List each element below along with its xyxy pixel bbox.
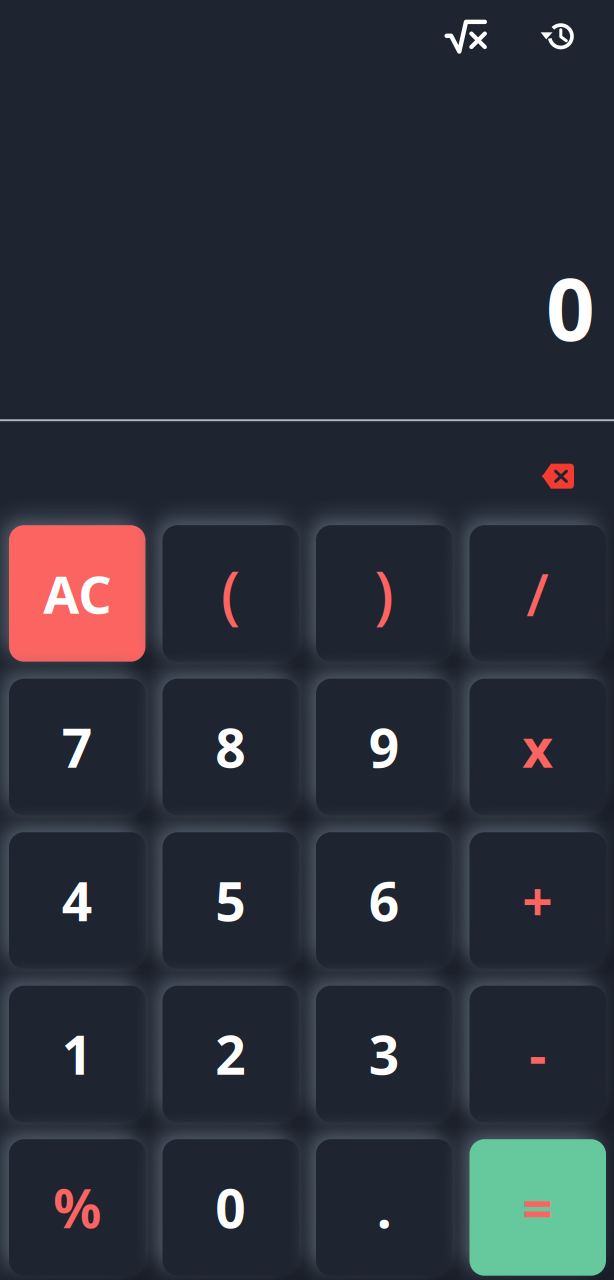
staticText: 0 [546,251,595,364]
button[interactable]: AC [9,525,145,662]
button[interactable]: 8 [162,679,299,815]
staticText: AC [43,559,111,628]
staticText: 9 [369,711,400,782]
button[interactable]: x [469,679,606,815]
staticText: 7 [62,711,93,782]
button[interactable]: ( [162,525,299,662]
staticText: x [522,711,553,782]
staticText: - [529,1018,546,1089]
button[interactable]: 3 [316,986,452,1122]
staticText: 4 [62,865,93,936]
button[interactable]: 0 [162,1139,299,1276]
staticText: % [53,1172,101,1243]
staticText: 5 [215,865,246,936]
staticText: ( [221,552,241,635]
button[interactable]: ) [316,525,452,662]
button[interactable]: 1 [9,986,145,1122]
staticText: 2 [215,1018,246,1089]
button[interactable]: Backspace [529,450,587,502]
staticText: = [522,1172,553,1243]
button[interactable]: = [469,1139,606,1276]
staticText: 3 [369,1018,400,1089]
staticText: 1 [62,1018,93,1089]
staticText: + [522,865,553,936]
staticText: 8 [215,711,246,782]
button[interactable]: 5 [162,832,299,969]
button[interactable]: 7 [9,679,145,815]
staticText: / [526,554,549,632]
button[interactable]: + [469,832,606,969]
button[interactable]: . [316,1139,452,1276]
staticText: ) [374,552,394,635]
staticText: 6 [369,865,400,936]
button[interactable]: History [530,7,588,65]
button[interactable]: 2 [162,986,299,1122]
button[interactable]: - [469,986,606,1122]
button[interactable]: % [9,1139,145,1276]
staticText: 0 [215,1172,246,1243]
button[interactable]: 9 [316,679,452,815]
button[interactable]: 4 [9,832,145,969]
button[interactable]: / [469,525,606,662]
staticText: . [377,1172,392,1243]
button[interactable]: 6 [316,832,452,969]
button[interactable]: Square root [435,8,495,66]
